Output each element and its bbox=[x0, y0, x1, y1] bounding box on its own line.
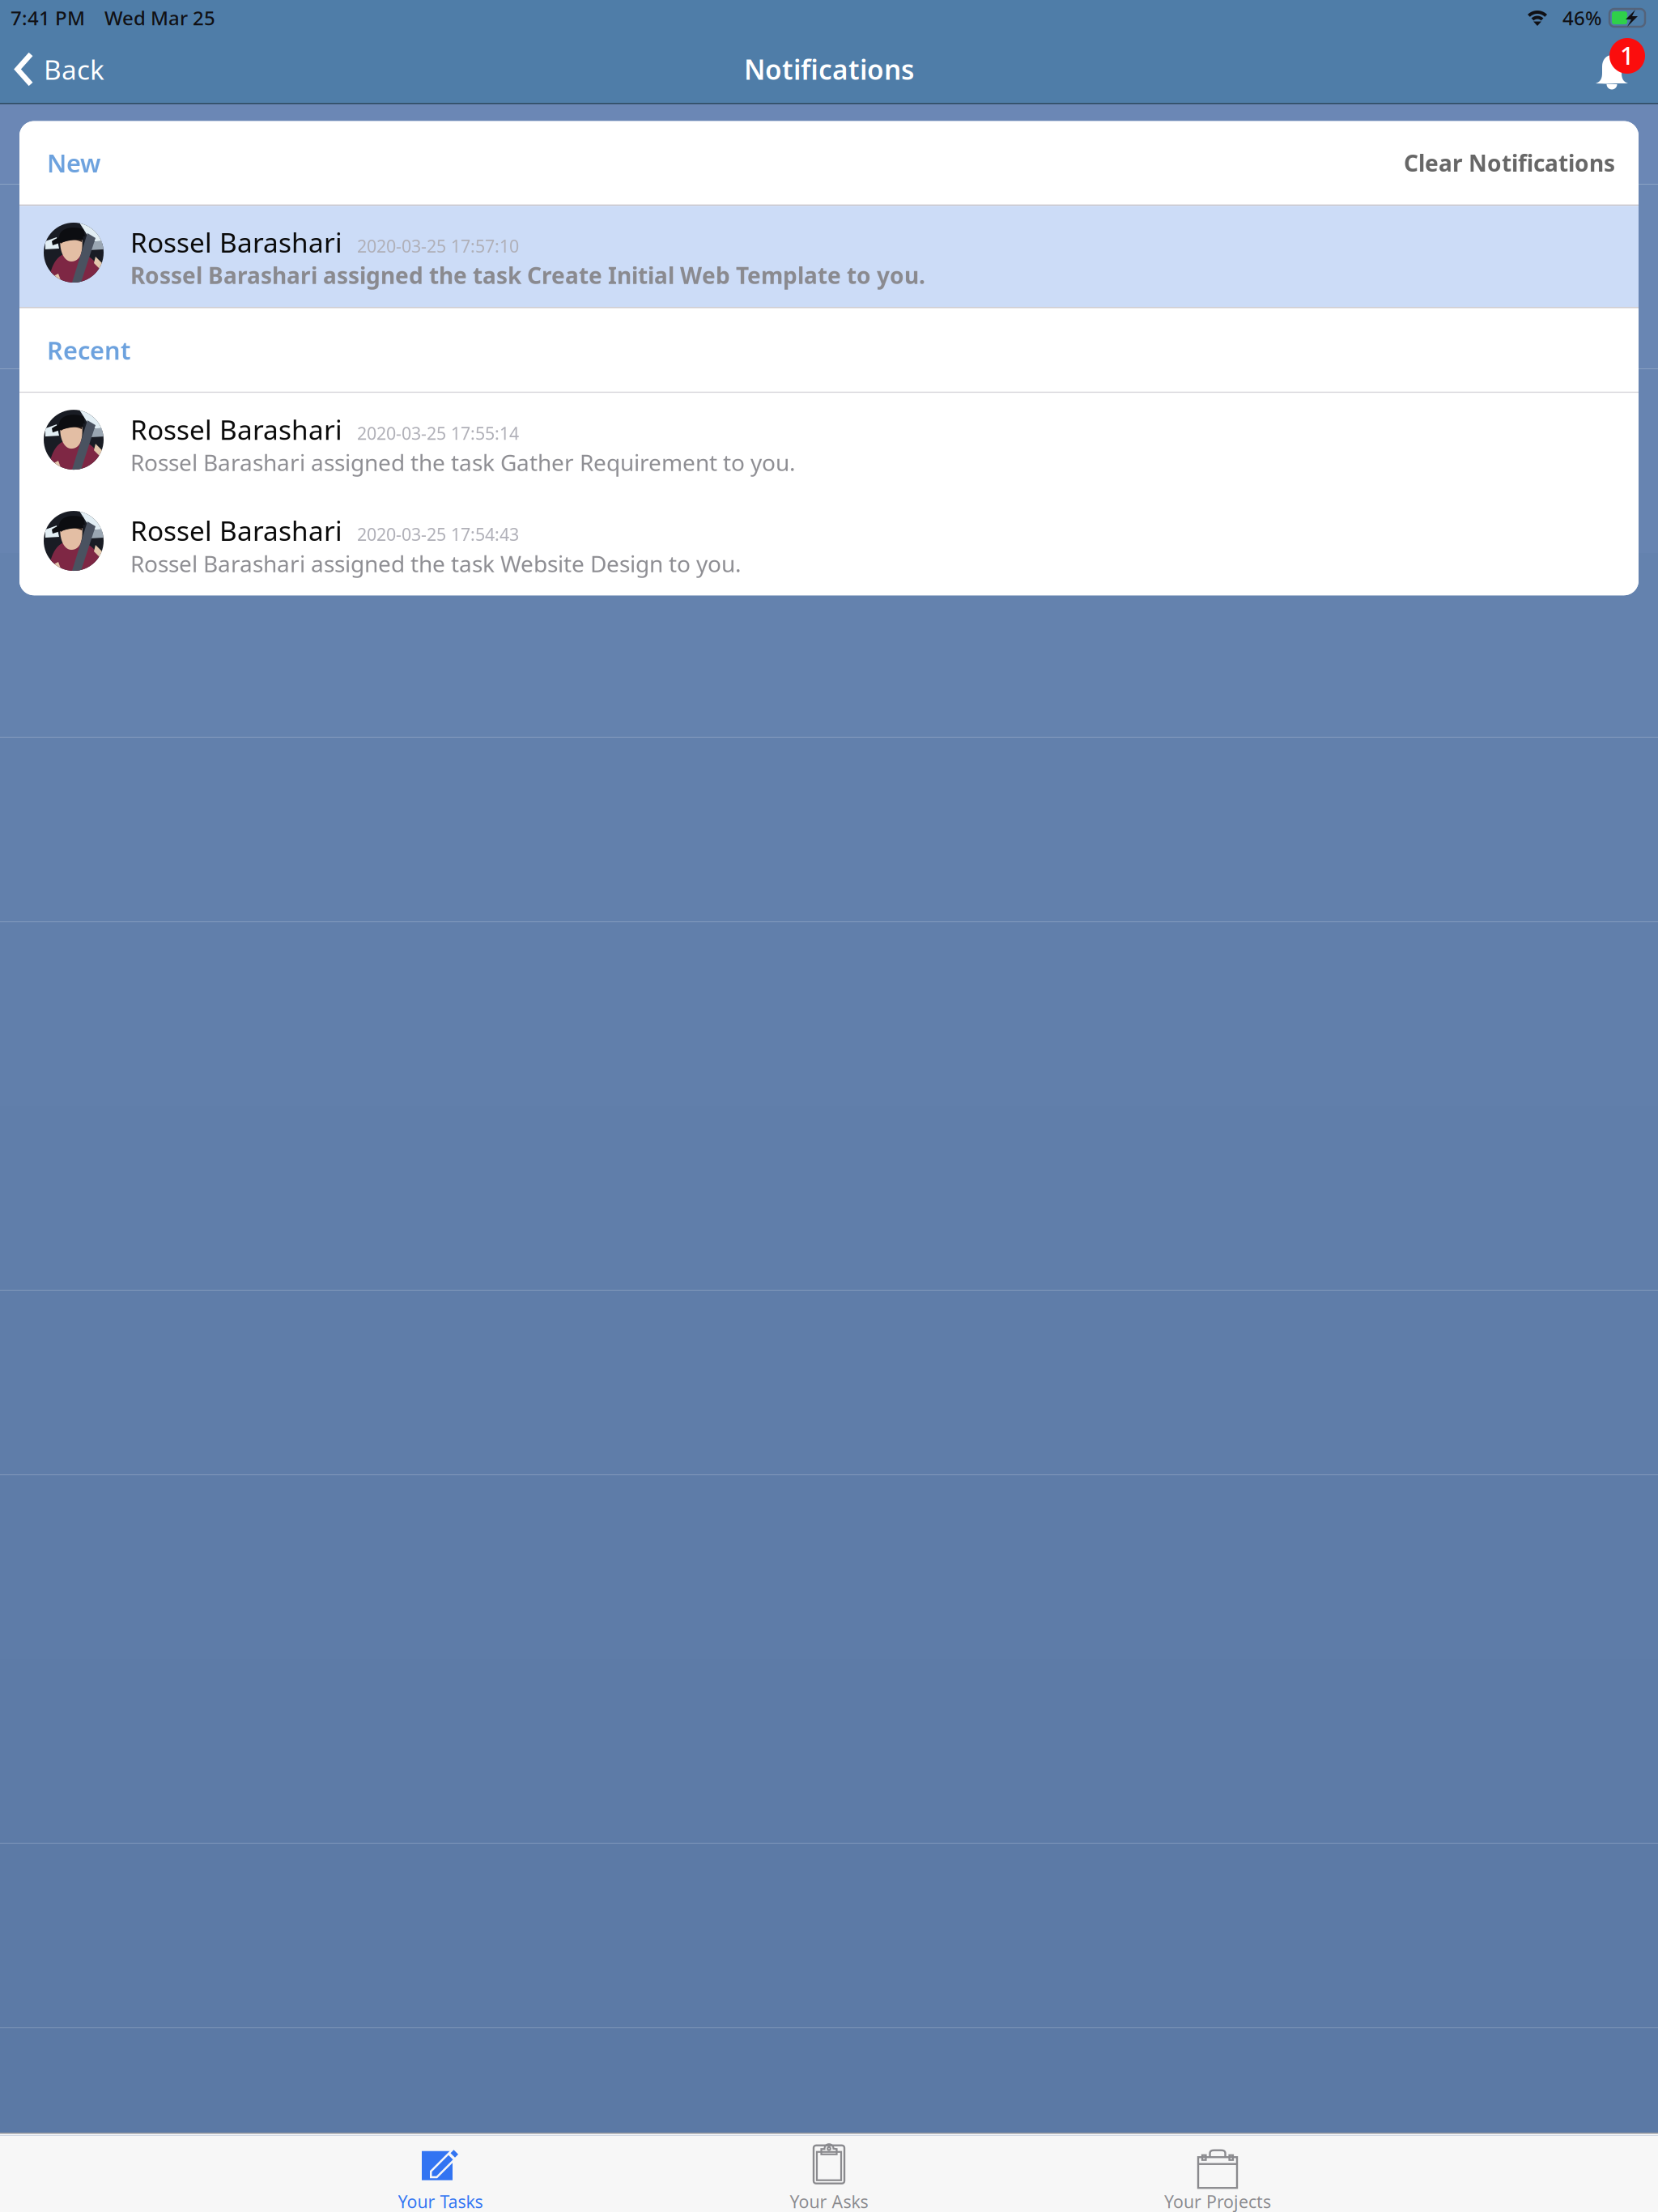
button[interactable]: Rossel Barashari bbox=[19, 206, 1639, 307]
staticText: Back bbox=[44, 51, 104, 87]
staticText: Rossel Barashari bbox=[130, 224, 342, 260]
button[interactable]: Rossel Barashari bbox=[19, 494, 1639, 595]
staticText: Clear Notifications bbox=[1404, 148, 1615, 178]
button[interactable]: Rossel Barashari bbox=[19, 393, 1639, 494]
staticText: 2020-03-25 17:54:43 bbox=[357, 523, 519, 546]
button[interactable]: Your Projects bbox=[1023, 2134, 1412, 2212]
staticText: 1 bbox=[1620, 39, 1635, 71]
staticText: Rossel Barashari bbox=[130, 411, 342, 447]
staticText: 46% bbox=[1562, 5, 1601, 31]
staticText: 2020-03-25 17:57:10 bbox=[357, 234, 519, 257]
staticText: Rossel Barashari assigned the task Websi… bbox=[130, 548, 742, 579]
staticText: 2020-03-25 17:55:14 bbox=[357, 422, 519, 445]
staticText: Your Asks bbox=[790, 2190, 868, 2212]
staticText: Notifications bbox=[744, 51, 914, 87]
staticText: Rossel Barashari assigned the task Creat… bbox=[130, 260, 925, 290]
button[interactable]: Your Tasks bbox=[246, 2134, 635, 2212]
button[interactable]: Your Asks bbox=[635, 2134, 1023, 2212]
staticText: Wed Mar 25 bbox=[104, 5, 215, 31]
staticText: Recent bbox=[47, 334, 130, 366]
button[interactable]: Back bbox=[0, 36, 170, 103]
button[interactable]: Clear Notifications bbox=[1404, 148, 1615, 178]
staticText: Rossel Barashari assigned the task Gathe… bbox=[130, 447, 796, 477]
staticText: 7:41 PM bbox=[11, 5, 85, 31]
staticText: Rossel Barashari bbox=[130, 513, 342, 548]
button[interactable]: Notifications bbox=[1588, 36, 1658, 103]
staticText: Your Tasks bbox=[398, 2190, 483, 2212]
staticText: New bbox=[47, 146, 100, 179]
staticText: Your Projects bbox=[1164, 2190, 1271, 2212]
